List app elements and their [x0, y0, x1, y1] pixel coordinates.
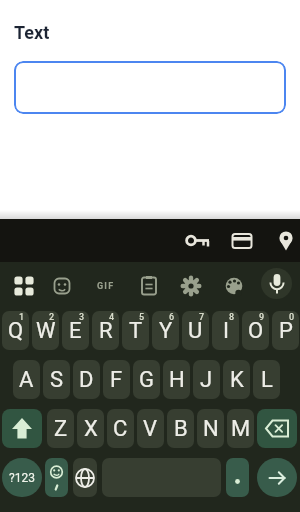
button[interactable]: W	[32, 311, 59, 350]
staticText: B	[174, 416, 188, 442]
button[interactable]: GIF	[92, 272, 120, 300]
button[interactable]: D	[73, 360, 100, 399]
staticText: W	[36, 318, 56, 344]
staticText: 5	[139, 312, 145, 323]
button[interactable]: A	[13, 360, 40, 399]
button[interactable]: C	[107, 409, 134, 448]
staticText: 1	[19, 312, 25, 323]
staticText: U	[188, 318, 203, 344]
button[interactable]	[257, 458, 297, 497]
button[interactable]: S	[43, 360, 70, 399]
button[interactable]: N	[197, 409, 224, 448]
button[interactable]	[186, 229, 210, 253]
button[interactable]	[177, 272, 205, 300]
staticText: K	[230, 367, 244, 393]
button[interactable]: U	[182, 311, 209, 350]
button[interactable]: F	[103, 360, 130, 399]
staticText: J	[200, 367, 213, 393]
staticText: 7	[199, 312, 205, 323]
button[interactable]	[261, 268, 292, 299]
button[interactable]	[73, 458, 97, 497]
staticText: 8	[229, 312, 235, 323]
button[interactable]: B	[167, 409, 194, 448]
button[interactable]: R	[92, 311, 119, 350]
button[interactable]	[274, 229, 298, 253]
staticText: D	[79, 367, 94, 393]
staticText: GIF	[97, 281, 115, 292]
staticText: L	[261, 367, 273, 393]
staticText: A	[19, 367, 34, 393]
staticText: Z	[54, 416, 68, 442]
staticText: G	[139, 367, 154, 393]
button[interactable]	[48, 272, 76, 300]
button[interactable]: H	[163, 360, 190, 399]
button[interactable]	[45, 458, 68, 497]
staticText: N	[203, 416, 219, 442]
staticText: H	[169, 367, 185, 393]
button[interactable]: E	[62, 311, 89, 350]
button[interactable]: Y	[152, 311, 179, 350]
button[interactable]	[14, 61, 286, 114]
button[interactable]: Q	[2, 311, 29, 350]
staticText: Text	[14, 22, 50, 43]
button[interactable]: L	[253, 360, 280, 399]
button[interactable]: K	[223, 360, 250, 399]
button[interactable]	[257, 409, 297, 448]
staticText: M	[231, 416, 251, 442]
staticText: I	[223, 318, 229, 344]
staticText: T	[129, 318, 143, 344]
button[interactable]: X	[77, 409, 104, 448]
staticText: R	[99, 318, 113, 344]
button[interactable]: ?123	[2, 458, 42, 497]
staticText: Y	[159, 318, 173, 344]
staticText: E	[69, 318, 82, 344]
staticText: V	[143, 416, 158, 442]
staticText: C	[113, 416, 128, 442]
staticText: F	[110, 367, 123, 393]
staticText: 0	[289, 312, 295, 323]
button[interactable]	[230, 229, 254, 253]
button[interactable]: T	[122, 311, 149, 350]
button[interactable]: V	[137, 409, 164, 448]
button[interactable]	[135, 272, 163, 300]
button[interactable]: G	[133, 360, 160, 399]
staticText: X	[84, 416, 98, 442]
staticText: O	[248, 318, 264, 344]
button[interactable]: Z	[47, 409, 74, 448]
button[interactable]	[10, 272, 38, 300]
button[interactable]: J	[193, 360, 220, 399]
button[interactable]	[220, 272, 248, 300]
button[interactable]	[2, 409, 42, 448]
staticText: Q	[8, 318, 24, 344]
button[interactable]: O	[242, 311, 269, 350]
staticText: 4	[109, 312, 115, 323]
button[interactable]	[226, 458, 249, 497]
button[interactable]: P	[272, 311, 299, 350]
staticText: 3	[79, 312, 85, 323]
staticText: 6	[169, 312, 175, 323]
staticText: 9	[259, 312, 265, 323]
staticText: S	[50, 367, 64, 393]
button[interactable]: I	[212, 311, 239, 350]
staticText: P	[279, 318, 293, 344]
button[interactable]: M	[227, 409, 254, 448]
staticText: ?123	[9, 471, 35, 485]
staticText: 2	[49, 312, 55, 323]
